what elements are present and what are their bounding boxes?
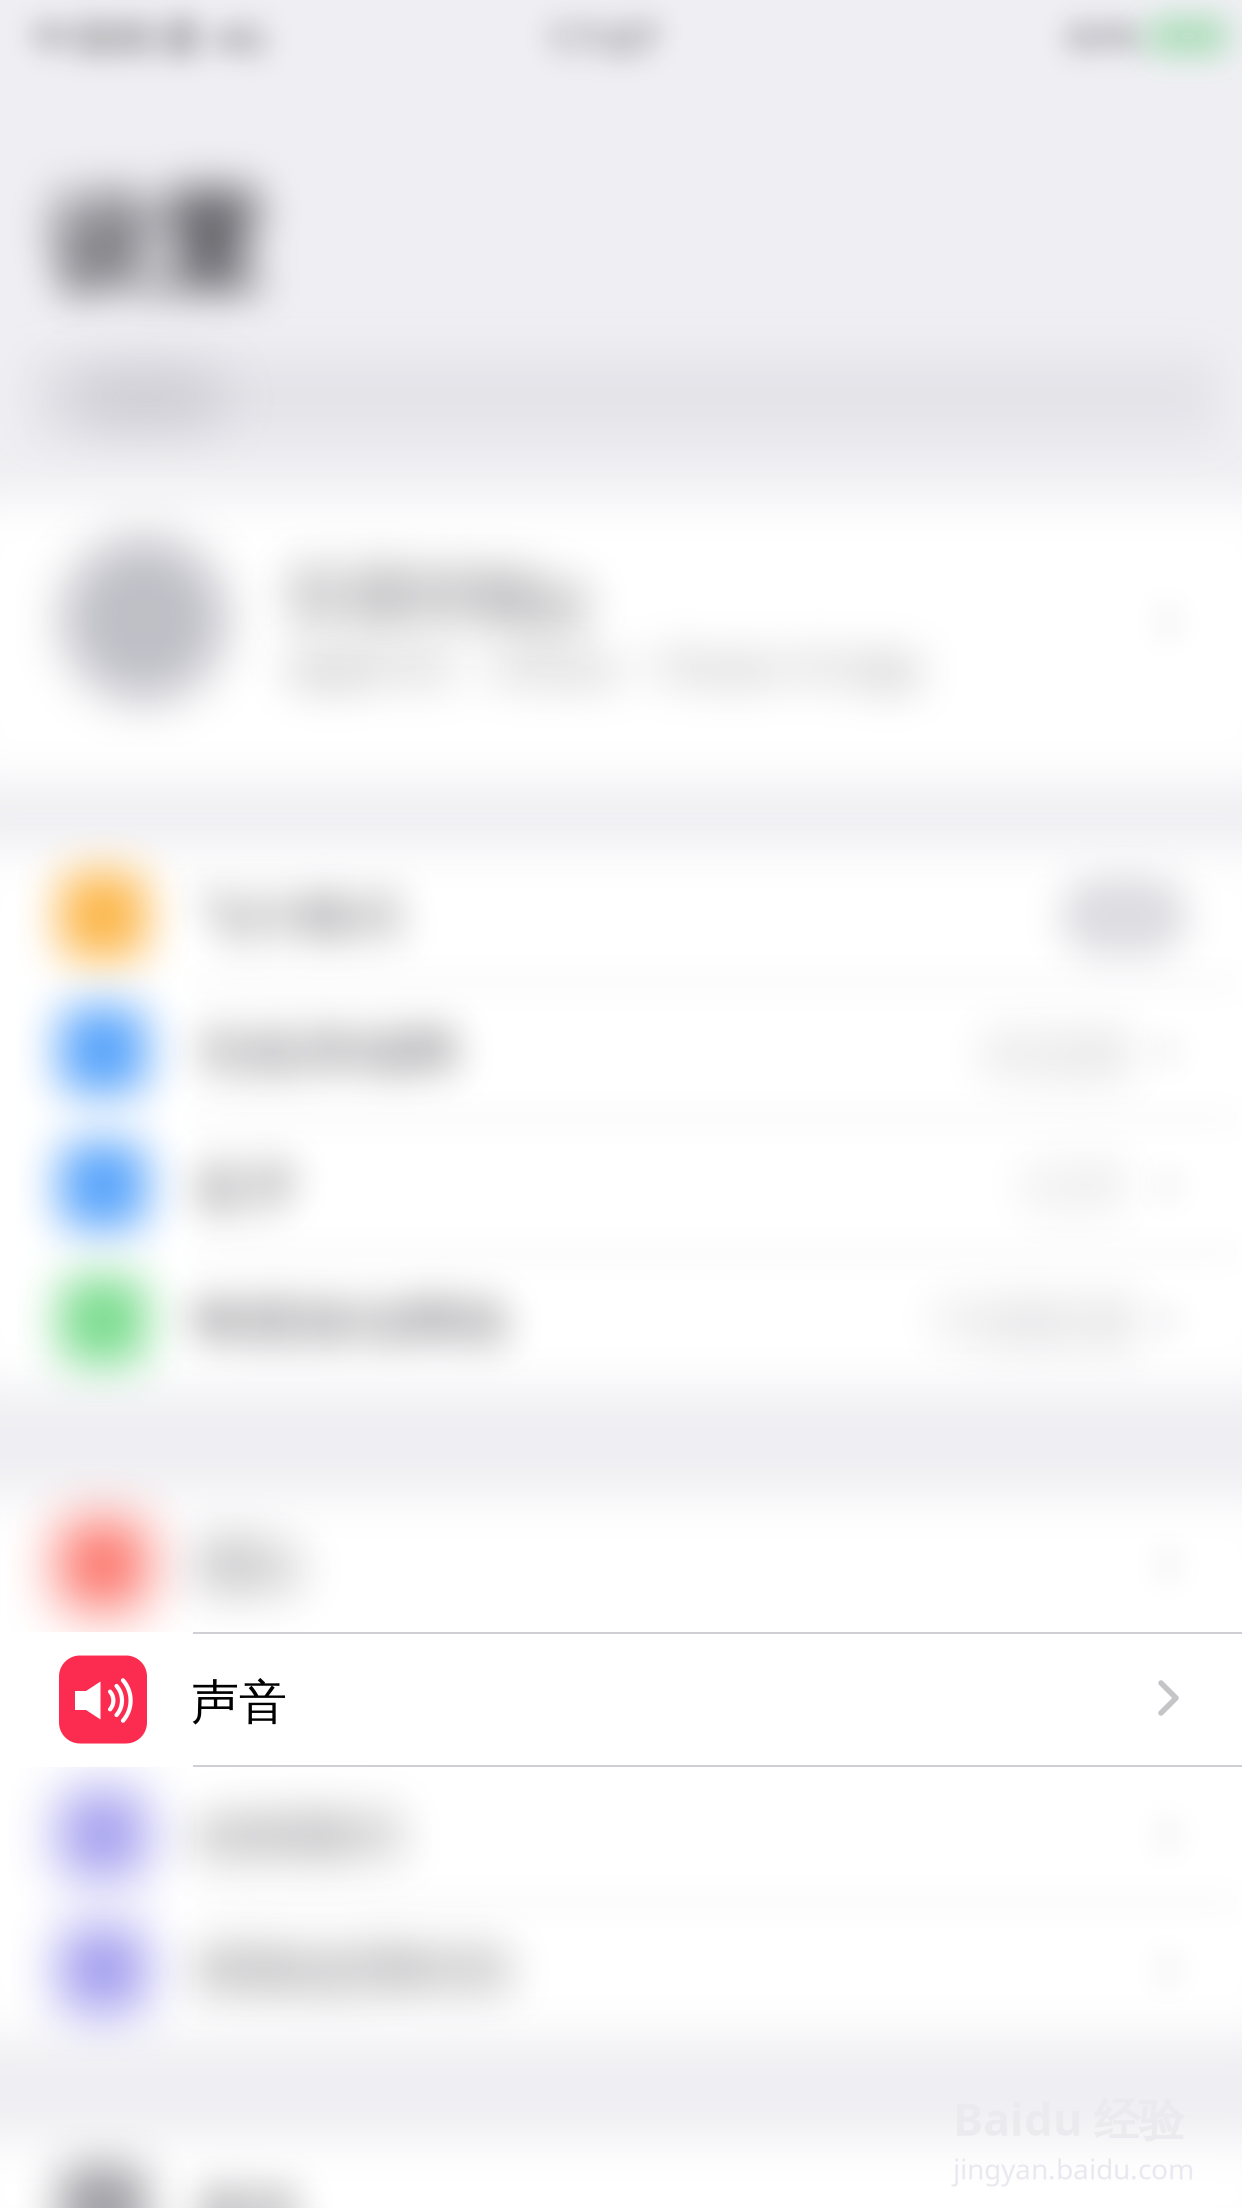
staticText: 声音 — [191, 1673, 287, 1732]
button[interactable]: 声音 — [0, 1632, 1242, 1767]
staticText: jingyan.baidu.com — [953, 2150, 1194, 2187]
staticText: Baidu 经验 — [953, 2088, 1184, 2148]
